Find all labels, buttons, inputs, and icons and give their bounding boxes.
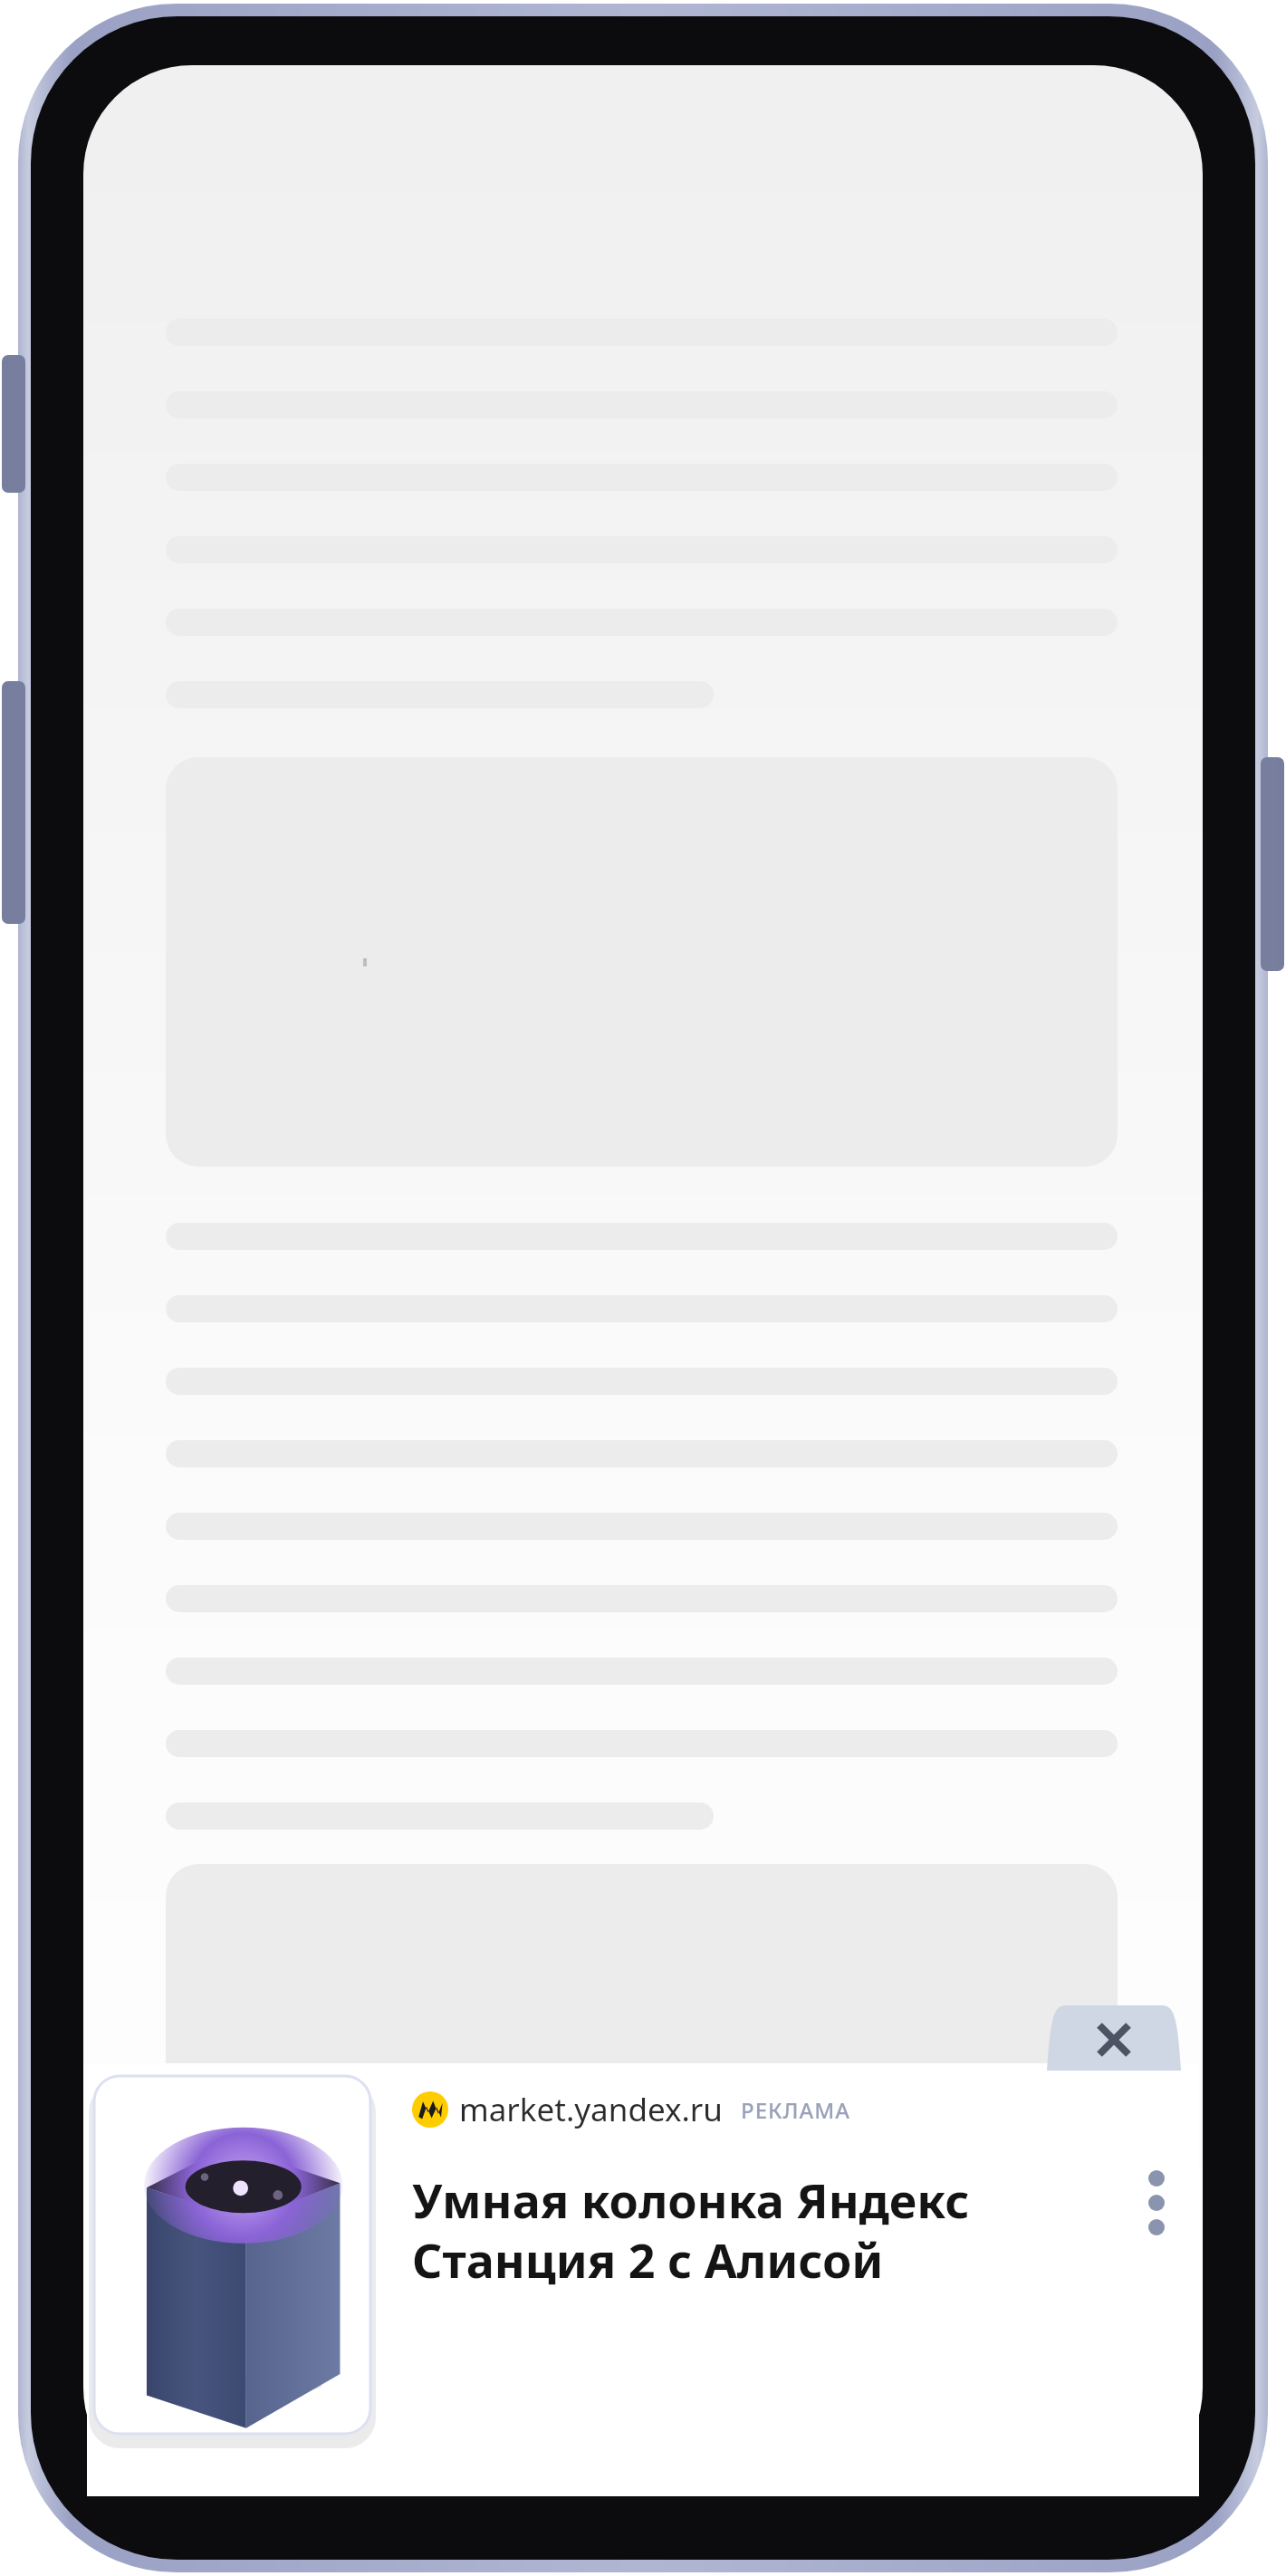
staticText: РЕКЛАМА [741,2095,850,2125]
button[interactable]: Закрыть рекламу [0,0,1286,2576]
staticText: market.yandex.ru [459,2088,723,2131]
staticText: Умная колонка Яндекс Станция 2 с Алисой [412,2167,970,2292]
button[interactable]: market.yandex.ru [412,2088,970,2292]
